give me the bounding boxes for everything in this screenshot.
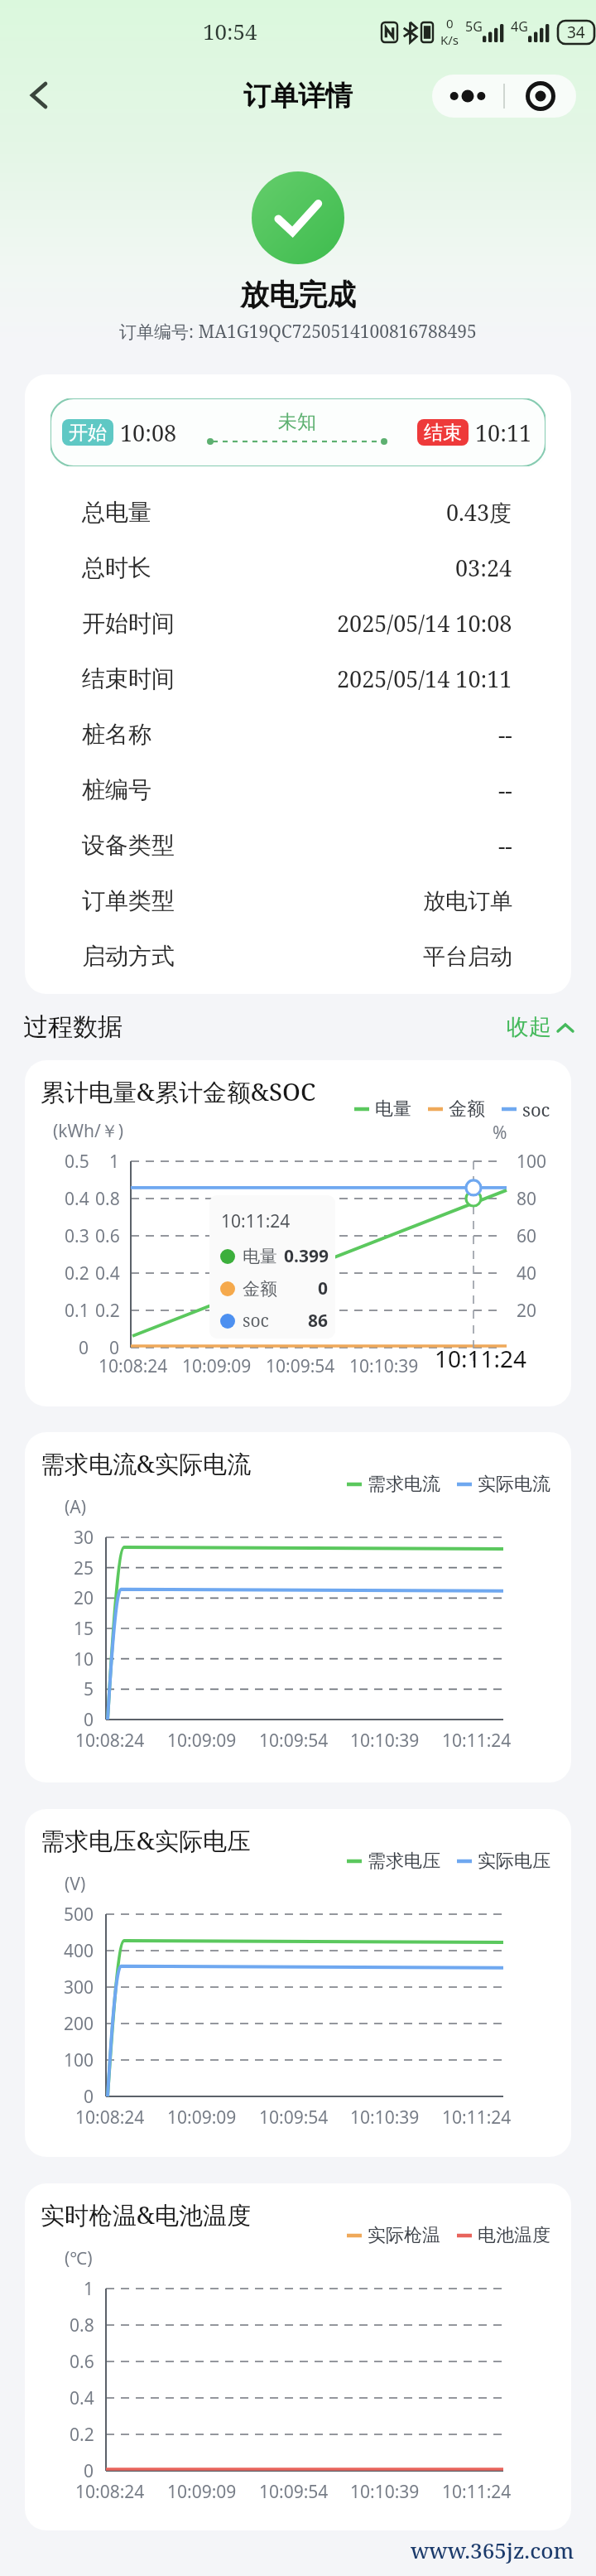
button[interactable]: 结束时间 [82,651,512,707]
staticText: 1 [84,2277,94,2301]
staticText: 10:09:54 [259,2480,329,2504]
staticText: 60 [517,1224,537,1248]
staticText: 0.6 [70,2350,94,2374]
staticText: 实际电压 [478,1850,550,1873]
staticText: 25 [74,1556,94,1580]
staticText: 订单详情 [243,79,353,113]
staticText: 金额 [243,1278,277,1300]
staticText: 10:10:39 [350,2106,420,2130]
staticText: 0 [318,1276,329,1300]
staticText: 20 [74,1586,94,1610]
staticText: 15 [74,1617,94,1641]
staticText: -- [498,719,512,750]
staticText: soc [522,1097,550,1122]
staticText: 10:09:54 [266,1354,335,1378]
staticText: 100 [64,2048,94,2072]
staticText: 0 [84,1708,94,1732]
staticText: 过程数据 [23,1011,123,1043]
staticText: 0.4 [70,2386,94,2410]
button[interactable]: 订单类型 [82,873,512,929]
staticText: 4G [511,17,528,36]
staticText: 0.4 [65,1187,89,1211]
staticText: 桩名称 [82,720,151,749]
staticText: 0.8 [70,2313,94,2337]
staticText: 10:09:09 [167,1729,237,1753]
staticText: 10:09:09 [167,2106,237,2130]
staticText: www.365jz.com [411,2535,574,2564]
staticText: 1 [109,1150,120,1174]
staticText: 放电完成 [240,277,356,313]
staticText: 10:54 [203,17,257,46]
staticText: 10:08:24 [75,2106,145,2130]
staticText: 10:10:39 [350,1729,420,1753]
staticText: 0.3 [65,1224,89,1248]
staticText: 收起 [507,1013,551,1041]
staticText: 设备类型 [82,831,175,860]
staticText: 86 [308,1309,329,1333]
button[interactable]: 总电量 [82,485,512,540]
staticText: 0.399 [284,1244,329,1268]
staticText: 10:09:09 [167,2480,237,2504]
staticText: 10:09:54 [259,2106,329,2130]
staticText: (V) [65,1872,86,1896]
staticText: 400 [64,1939,94,1963]
staticText: 0.1 [65,1299,89,1323]
staticText: 0.6 [95,1224,120,1248]
staticText: 订单类型 [82,886,175,915]
staticText: 开始 [69,421,107,445]
staticText: 10:11:24 [442,1729,512,1753]
button[interactable]: Close mini program [505,75,576,118]
staticText: 100 [517,1150,547,1174]
staticText: 10:09:54 [259,1729,329,1753]
staticText: 10:11:24 [442,2480,512,2504]
staticText: 0.8 [95,1187,120,1211]
staticText: 34 [567,22,585,43]
staticText: 0.43度 [446,497,512,528]
button[interactable]: Back [20,76,58,114]
staticText: 0.5 [65,1150,89,1174]
staticText: -- [498,774,512,805]
staticText: 0.2 [95,1299,120,1323]
staticText: 40 [517,1261,537,1286]
staticText: 0 [84,2459,94,2483]
staticText: 0.2 [70,2423,94,2447]
staticText: 需求电压 [368,1850,440,1873]
staticText: 2025/05/14 10:11 [337,663,512,694]
staticText: 未知 [278,410,316,434]
staticText: 10:10:39 [349,1354,419,1378]
staticText: 订单编号: MA1G19QC7250514100816788495 [119,320,477,344]
staticText: 电量 [243,1246,277,1267]
button[interactable]: 桩编号 [82,762,512,818]
staticText: 需求电流 [368,1473,440,1496]
staticText: 30 [74,1526,94,1550]
button[interactable]: 开始时间 [82,596,512,651]
staticText: 03:24 [455,552,512,583]
staticText: % [493,1121,507,1145]
staticText: 开始时间 [82,609,175,638]
staticText: (A) [65,1495,87,1519]
staticText: 需求电压&实际电压 [41,1824,251,1857]
staticText: 0.4 [95,1261,120,1286]
staticText: 5G [465,17,483,36]
staticText: 电池温度 [478,2224,550,2247]
staticText: 0 [446,15,454,31]
staticText: 80 [517,1187,537,1211]
staticText: 实时枪温&电池温度 [41,2198,251,2231]
button[interactable]: More options [432,75,503,118]
staticText: 10 [74,1647,94,1672]
button[interactable]: 设备类型 [82,818,512,873]
staticText: 桩编号 [82,775,151,804]
staticText: 总时长 [82,553,151,582]
staticText: 10:08 [120,417,177,448]
button[interactable]: 收起 [507,1013,574,1041]
staticText: 实际电流 [478,1473,550,1496]
staticText: 10:08:24 [99,1354,168,1378]
button[interactable]: 总时长 [82,540,512,596]
button[interactable]: 启动方式 [82,929,512,984]
staticText: 5 [84,1677,94,1701]
staticText: 20 [517,1299,537,1323]
staticText: -- [498,830,512,861]
button[interactable]: 桩名称 [82,707,512,762]
staticText: 启动方式 [82,942,175,971]
staticText: 需求电流&实际电流 [41,1447,251,1480]
